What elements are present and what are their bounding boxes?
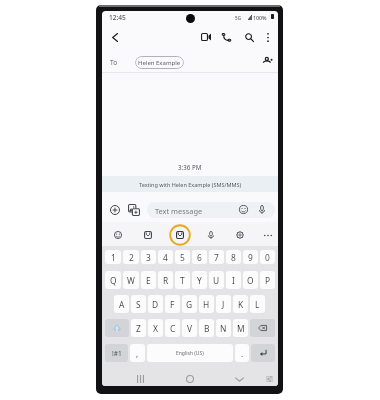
staticText: Text message [155,206,203,216]
button[interactable]: More [257,224,278,246]
staticText: . [241,348,244,359]
button[interactable]: Add attachment [108,203,122,217]
button[interactable]: 9 [243,250,258,264]
button[interactable]: !#1 [105,344,128,362]
button[interactable]: Text message [147,202,275,218]
button[interactable]: B [199,319,214,337]
staticText: D [152,299,159,310]
button[interactable]: 7 [209,250,224,264]
staticText: U [213,275,220,286]
button[interactable]: 5 [175,250,190,264]
staticText: S [136,299,141,310]
button[interactable]: 4 [158,250,173,264]
button[interactable]: Z [131,319,146,337]
button[interactable]: P [260,271,275,289]
staticText: N [220,323,227,334]
button[interactable]: V [182,319,197,337]
staticText: 5 [180,252,185,263]
button[interactable]: 3 [141,250,156,264]
staticText: R [163,275,169,286]
staticText: Q [110,275,117,286]
button[interactable]: Enter [251,344,275,362]
button[interactable]: Video call [197,28,215,46]
button[interactable]: R [158,271,173,289]
staticText: 1 [111,252,116,263]
button[interactable]: T [175,271,190,289]
staticText: C [170,323,176,334]
button[interactable]: Hide keyboard [231,372,247,386]
button[interactable]: D [148,295,163,313]
staticText: E [146,275,151,286]
button[interactable]: Add recipient [258,53,276,67]
staticText: P [265,275,271,286]
button[interactable]: E [141,271,156,289]
staticText: X [153,323,158,334]
button[interactable]: N [216,319,231,337]
staticText: L [255,299,260,310]
button[interactable]: Clipboard [169,224,191,246]
button[interactable]: O [243,271,258,289]
staticText: O [247,275,254,286]
button[interactable]: Voice input [200,224,222,246]
button[interactable]: J [216,295,231,313]
button[interactable]: M [233,319,248,337]
button[interactable]: Search [240,28,258,46]
staticText: Texting with Helen Example (SMS/MMS) [139,181,242,188]
staticText: J [222,299,225,310]
button[interactable]: 1 [105,250,121,264]
button[interactable]: Settings [229,224,251,246]
button[interactable]: Gallery [127,203,141,217]
staticText: M [237,323,245,334]
button[interactable]: H [199,295,214,313]
button[interactable]: S [131,295,146,313]
staticText: Y [197,275,202,286]
button[interactable]: Stickers [137,224,159,246]
button[interactable]: 2 [123,250,139,264]
staticText: 2 [129,252,134,263]
staticText: Helen Example [138,59,181,67]
button[interactable]: K [233,295,248,313]
staticText: 5G [235,15,241,21]
staticText: 4 [163,252,168,263]
button[interactable]: Q [105,271,121,289]
button[interactable]: Keyboard settings [261,372,277,386]
button[interactable]: W [123,271,139,289]
staticText: 6 [197,252,202,263]
button[interactable]: . [235,344,249,362]
button[interactable]: X [148,319,163,337]
staticText: W [127,275,135,286]
button[interactable]: Shift [105,319,129,337]
staticText: 0 [265,252,270,263]
button[interactable]: I [226,271,241,289]
staticText: H [203,299,210,310]
button[interactable]: English (US) [147,344,233,362]
button[interactable]: F [165,295,180,313]
button[interactable]: , [130,344,145,362]
button[interactable]: 0 [260,250,275,264]
staticText: 7 [214,252,219,263]
button[interactable]: Call [217,28,235,46]
button[interactable]: C [165,319,180,337]
button[interactable]: Home [182,372,198,386]
button[interactable]: Y [192,271,207,289]
button[interactable]: L [250,295,265,313]
button[interactable]: 6 [192,250,207,264]
button[interactable]: Recents [132,372,148,386]
button[interactable]: 8 [226,250,241,264]
button[interactable]: Helen Example [135,56,184,69]
staticText: 12:45 [109,13,126,22]
staticText: 100% [253,14,267,21]
button[interactable]: More options [259,28,277,46]
button[interactable]: Back [106,28,124,46]
button[interactable]: Backspace [250,319,275,337]
staticText: K [238,299,244,310]
button[interactable]: A [114,295,129,313]
button[interactable]: G [182,295,197,313]
button[interactable]: U [209,271,224,289]
staticText: 9 [248,252,253,263]
staticText: I [232,275,235,286]
staticText: G [186,299,193,310]
button[interactable]: Emoji [107,224,129,246]
staticText: 3:36 PM [178,163,202,171]
staticText: English (US) [176,350,204,357]
